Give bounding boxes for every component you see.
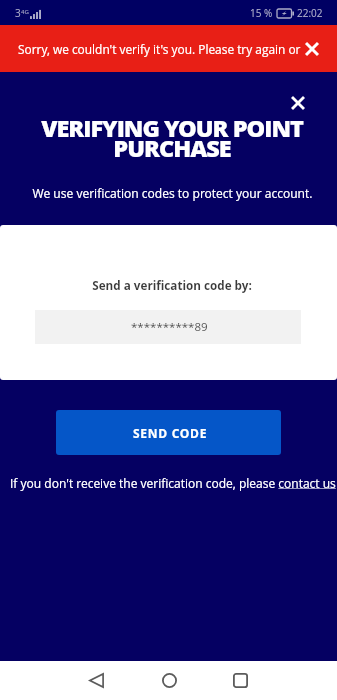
staticText: 22:02	[297, 6, 323, 20]
button[interactable]: Recent apps	[212, 661, 268, 700]
staticText: 3	[15, 6, 21, 20]
button[interactable]: Back	[68, 661, 124, 700]
staticText: 4G	[21, 8, 29, 16]
button[interactable]: Home	[141, 661, 197, 700]
staticText: VERIFYING YOUR POINT PURCHASE	[7, 112, 337, 163]
button[interactable]: SEND CODE	[56, 410, 281, 455]
button[interactable]: If you don't receive the verification co…	[10, 475, 336, 491]
staticText: SEND CODE	[133, 425, 208, 441]
staticText: 15 %	[250, 6, 273, 20]
button[interactable]: **********89	[35, 310, 301, 344]
button[interactable]: Dismiss message	[301, 38, 323, 60]
staticText: **********89	[131, 319, 208, 335]
staticText: We use verification codes to protect you…	[8, 185, 337, 201]
staticText: Send a verification code by:	[7, 277, 337, 293]
staticText: Sorry, we couldn't verify it's you. Plea…	[18, 41, 301, 57]
button[interactable]: Close	[288, 93, 308, 113]
